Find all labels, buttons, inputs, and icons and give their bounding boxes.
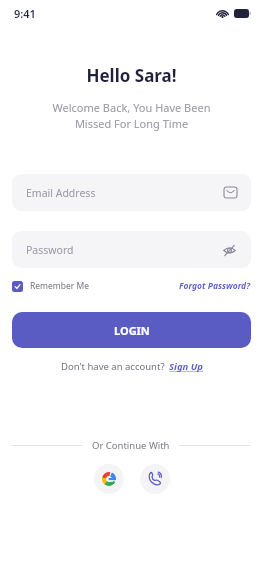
button[interactable]: Continue with Google <box>94 464 124 494</box>
button[interactable]: Sign Up <box>169 360 203 373</box>
staticText: Remember Me <box>30 280 90 292</box>
button[interactable]: Show password <box>221 242 237 258</box>
staticText: Password <box>26 243 221 257</box>
staticText: LOGIN <box>114 323 150 338</box>
staticText: Welcome Back, You Have Been Missed For L… <box>0 100 263 132</box>
staticText: Sign Up <box>169 360 203 373</box>
button[interactable]: Password <box>12 231 251 268</box>
staticText: Don't have an account? <box>61 360 165 373</box>
button[interactable]: Email Address <box>12 174 251 211</box>
button[interactable]: Continue with phone number <box>140 464 170 494</box>
button[interactable]: Remember Me <box>12 280 90 292</box>
button[interactable]: LOGIN <box>12 312 251 348</box>
staticText: Hello Sara! <box>0 64 263 87</box>
staticText: 9:41 <box>14 6 36 21</box>
button[interactable]: Forgot Password? <box>179 280 251 292</box>
staticText: Forgot Password? <box>179 280 251 292</box>
staticText: Email Address <box>26 186 224 200</box>
staticText: Or Continue With <box>92 439 170 452</box>
